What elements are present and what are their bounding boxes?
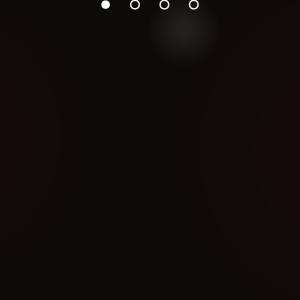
button[interactable]: Page 1 of 4 bbox=[93, 0, 119, 26]
button[interactable]: Page 2 of 4 bbox=[122, 0, 148, 26]
button[interactable]: Page 3 of 4 bbox=[151, 0, 177, 26]
button[interactable]: Page 4 of 4 bbox=[181, 0, 207, 26]
